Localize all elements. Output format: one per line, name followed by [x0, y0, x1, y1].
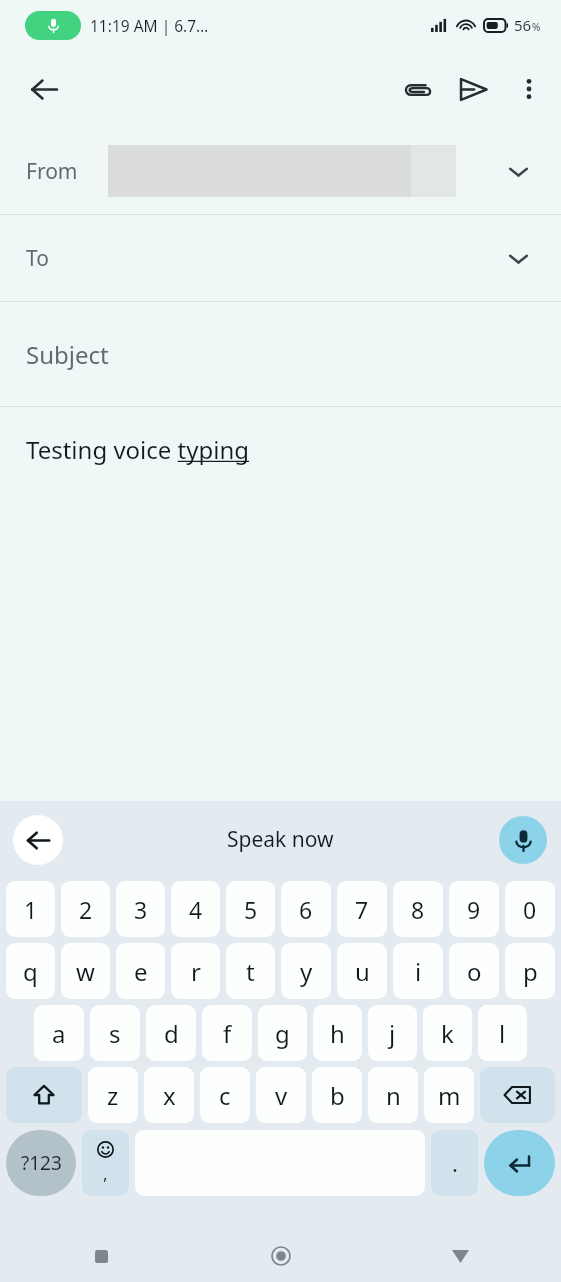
button[interactable]: Attach file [389, 61, 445, 117]
staticText: g [275, 1017, 290, 1050]
staticText: i [415, 955, 422, 988]
button[interactable]: m [424, 1067, 474, 1123]
button[interactable]: Microphone [499, 816, 547, 864]
button[interactable]: p [505, 943, 555, 999]
button[interactable]: Back [439, 1235, 481, 1277]
staticText: k [441, 1017, 454, 1050]
button[interactable]: d [146, 1005, 196, 1061]
button[interactable]: h [313, 1005, 362, 1061]
button[interactable]: t [226, 943, 275, 999]
button[interactable]: a [34, 1005, 84, 1061]
button[interactable]: l [478, 1005, 527, 1061]
staticText: p [523, 955, 538, 988]
staticText: 56 [514, 15, 532, 35]
staticText: s [109, 1017, 121, 1050]
button[interactable]: Expand recipients [495, 235, 541, 281]
staticText: 1 [24, 894, 38, 925]
button[interactable]: y [281, 943, 331, 999]
button[interactable]: w [61, 943, 110, 999]
button[interactable]: Send [445, 61, 501, 117]
staticText: d [164, 1017, 179, 1050]
staticText: ?123 [21, 1150, 62, 1176]
staticText: j [389, 1017, 396, 1050]
staticText: b [330, 1079, 345, 1112]
button[interactable]: 5 [226, 881, 275, 937]
button[interactable]: 7 [337, 881, 387, 937]
staticText: x [163, 1079, 176, 1112]
button[interactable]: e [116, 943, 165, 999]
staticText: y [300, 955, 313, 988]
button[interactable]: From [0, 128, 561, 214]
staticText: Speak now [227, 825, 334, 854]
staticText: o [467, 955, 482, 988]
staticText: 6 [299, 894, 313, 925]
button[interactable]: n [368, 1067, 418, 1123]
button[interactable]: z [88, 1067, 138, 1123]
staticText: % [532, 20, 541, 34]
button[interactable]: Backspace [480, 1067, 555, 1123]
button[interactable]: 3 [116, 881, 165, 937]
staticText: 11:19 AM | 6.7… [90, 15, 209, 36]
button[interactable]: Back to keyboard [13, 815, 63, 865]
button[interactable]: k [423, 1005, 472, 1061]
button[interactable]: Recent apps [80, 1235, 122, 1277]
button[interactable]: r [171, 943, 220, 999]
button[interactable]: Expand recipients [495, 148, 541, 194]
staticText: , [103, 1162, 108, 1185]
button[interactable]: More options [501, 61, 557, 117]
staticText: m [438, 1079, 461, 1112]
button[interactable]: Shift [6, 1067, 82, 1123]
button[interactable]: 4 [171, 881, 220, 937]
staticText: u [355, 955, 370, 988]
button[interactable]: 1 [6, 881, 55, 937]
staticText: a [52, 1017, 66, 1050]
button[interactable]: j [368, 1005, 417, 1061]
button[interactable]: To [0, 215, 561, 301]
button[interactable]: 6 [281, 881, 331, 937]
button[interactable]: g [258, 1005, 307, 1061]
button[interactable]: 2 [61, 881, 110, 937]
staticText: w [76, 955, 95, 988]
button[interactable]: q [6, 943, 55, 999]
button[interactable]: Enter [484, 1130, 555, 1196]
staticText: . [452, 1148, 458, 1178]
button[interactable]: Testing voice typing [26, 433, 561, 466]
button[interactable]: o [449, 943, 499, 999]
staticText: e [134, 955, 148, 988]
button[interactable]: Back [16, 61, 72, 117]
button[interactable]: ?123 [6, 1130, 76, 1196]
staticText: c [219, 1079, 231, 1112]
staticText: 4 [189, 894, 203, 925]
staticText: 2 [79, 894, 93, 925]
staticText: To [26, 244, 49, 273]
button[interactable]: Subject [0, 302, 561, 406]
staticText: 8 [411, 894, 425, 925]
staticText: 0 [523, 894, 537, 925]
staticText: Testing voice typing [26, 433, 250, 466]
button[interactable]: 8 [393, 881, 443, 937]
button[interactable]: Home [260, 1235, 302, 1277]
staticText: h [330, 1017, 345, 1050]
staticText: Subject [26, 338, 109, 371]
staticText: 5 [244, 894, 258, 925]
button[interactable]: Emoji [82, 1130, 129, 1196]
button[interactable]: 9 [449, 881, 499, 937]
button[interactable]: . [431, 1130, 478, 1196]
button[interactable]: v [256, 1067, 306, 1123]
staticText: v [275, 1079, 288, 1112]
staticText: n [386, 1079, 401, 1112]
button[interactable]: u [337, 943, 387, 999]
staticText: 7 [355, 894, 369, 925]
button[interactable]: x [144, 1067, 194, 1123]
button[interactable]: i [393, 943, 443, 999]
staticText: l [499, 1017, 506, 1050]
button[interactable]: b [312, 1067, 362, 1123]
staticText: q [23, 955, 38, 988]
staticText: 9 [467, 894, 481, 925]
button[interactable]: s [90, 1005, 140, 1061]
button[interactable]: 0 [505, 881, 555, 937]
staticText: From [26, 157, 78, 186]
button[interactable]: c [200, 1067, 250, 1123]
button[interactable]: f [202, 1005, 252, 1061]
